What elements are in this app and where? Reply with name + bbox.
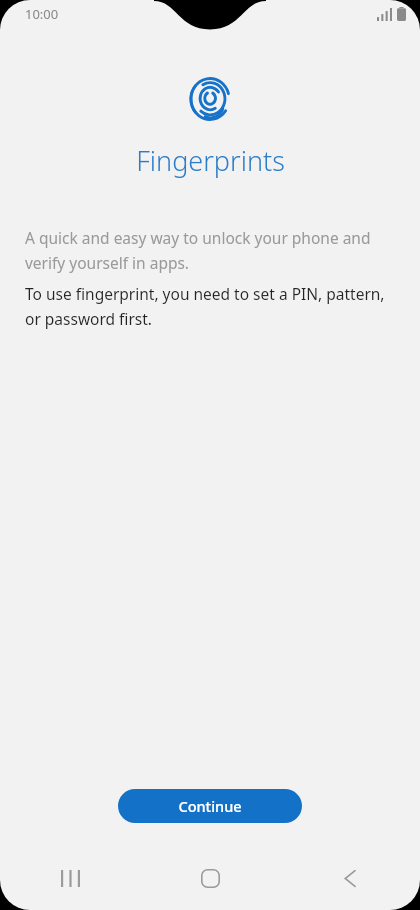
staticText: Continue (178, 796, 242, 816)
staticText: To use fingerprint, you need to set a PI… (25, 283, 385, 330)
staticText: A quick and easy way to unlock your phon… (25, 227, 380, 274)
staticText: 10:00 (25, 5, 59, 23)
button[interactable]: Recent apps (0, 856, 140, 900)
button[interactable]: Back (280, 856, 420, 900)
button[interactable]: Continue (118, 789, 302, 823)
staticText: Fingerprints (136, 142, 285, 179)
button[interactable]: Home (140, 856, 280, 900)
